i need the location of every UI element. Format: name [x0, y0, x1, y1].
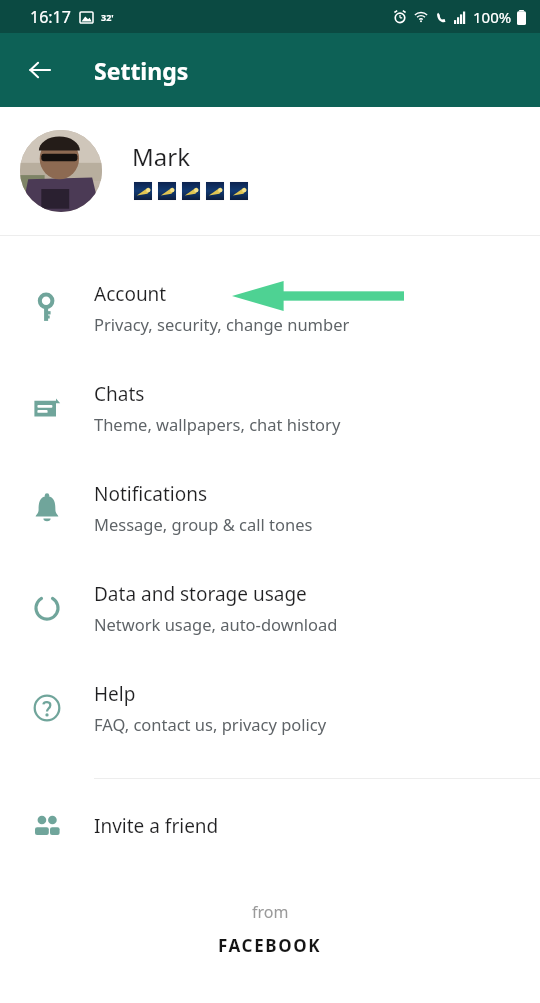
- button[interactable]: Invite a friend: [0, 793, 540, 859]
- staticText: 32': [101, 11, 114, 23]
- staticText: Chats: [94, 381, 145, 407]
- staticText: Settings: [94, 55, 189, 86]
- staticText: Privacy, security, change number: [94, 313, 350, 335]
- staticText: Message, group & call tones: [94, 513, 313, 535]
- button[interactable]: Notifications: [0, 458, 540, 558]
- button[interactable]: Help: [0, 658, 540, 758]
- button[interactable]: Mark: [0, 107, 540, 235]
- staticText: 100%: [473, 7, 512, 27]
- staticText: Theme, wallpapers, chat history: [94, 413, 341, 435]
- staticText: Help: [94, 681, 136, 707]
- button[interactable]: Data and storage usage: [0, 558, 540, 658]
- staticText: Data and storage usage: [94, 581, 307, 607]
- staticText: Network usage, auto-download: [94, 613, 338, 635]
- button[interactable]: Chats: [0, 358, 540, 458]
- staticText: Account: [94, 281, 167, 307]
- staticText: FACEBOOK: [218, 934, 322, 957]
- button[interactable]: Account: [0, 258, 540, 358]
- staticText: FAQ, contact us, privacy policy: [94, 713, 327, 735]
- staticText: Invite a friend: [94, 813, 219, 839]
- staticText: Notifications: [94, 481, 208, 507]
- button[interactable]: Back: [20, 50, 60, 90]
- staticText: Mark: [132, 140, 190, 173]
- staticText: 16:17: [30, 6, 71, 28]
- staticText: from: [252, 901, 289, 923]
